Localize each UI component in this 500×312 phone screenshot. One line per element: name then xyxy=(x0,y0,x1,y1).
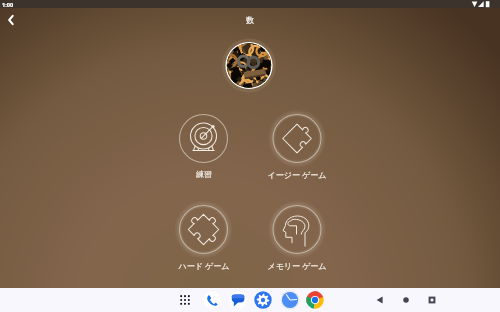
button[interactable]: Phone xyxy=(201,289,223,311)
button[interactable]: Back xyxy=(0,8,22,32)
button[interactable]: Recents xyxy=(421,289,443,311)
button[interactable] xyxy=(179,205,229,255)
button[interactable]: All apps xyxy=(174,289,196,311)
staticText: メモリー ゲーム xyxy=(237,260,357,271)
button[interactable] xyxy=(272,205,322,255)
button[interactable] xyxy=(179,114,229,164)
button[interactable]: Back xyxy=(369,289,391,311)
button[interactable]: Chrome xyxy=(304,289,326,311)
button[interactable]: Home xyxy=(395,289,417,311)
staticText: ハード ゲーム xyxy=(144,260,264,271)
staticText: イージー ゲーム xyxy=(237,169,357,180)
button[interactable]: Messages xyxy=(227,289,249,311)
button[interactable]: Clock xyxy=(279,289,301,311)
staticText: 練習 xyxy=(144,169,264,179)
staticText: 数 xyxy=(246,15,254,25)
staticText: 1:00 xyxy=(2,1,14,9)
button[interactable] xyxy=(272,114,322,164)
button[interactable]: Settings xyxy=(252,289,274,311)
